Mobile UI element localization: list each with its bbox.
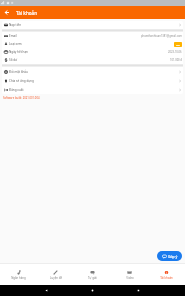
button[interactable]: Góp ý (157, 251, 182, 261)
staticText: Loại xem (9, 42, 22, 46)
staticText: Luyện đề (50, 276, 62, 280)
button[interactable]: Chia sẻ ứng dụng (2, 76, 183, 85)
staticText: Ngày hết hạn (9, 50, 28, 54)
button[interactable]: Đổi mật khẩu (2, 67, 183, 76)
staticText: 101.000 đ (170, 58, 182, 62)
button[interactable]: Số dư (2, 56, 183, 64)
staticText: Đổi mật khẩu (9, 70, 28, 74)
button[interactable]: Ngày hết hạn (2, 48, 183, 56)
button[interactable]: Loại xem (2, 40, 183, 48)
button[interactable]: Luyện đề (37, 270, 74, 280)
staticText: Góp ý (168, 254, 178, 259)
button[interactable]: Video (111, 270, 148, 280)
button[interactable]: Ngân hàng (0, 270, 37, 280)
button[interactable]: Email (2, 32, 183, 40)
button[interactable]: Đăng xuất (2, 85, 183, 94)
staticText: Tài khoản (160, 276, 173, 280)
staticText: Email (9, 34, 17, 38)
staticText: VIP (176, 43, 180, 46)
button[interactable]: Tự giải (74, 270, 111, 280)
staticText: Nạp tiền (9, 23, 21, 27)
staticText: Đăng xuất (9, 88, 24, 92)
staticText: Ngân hàng (11, 276, 26, 280)
staticText: Video (126, 276, 134, 280)
staticText: Tài khoản (16, 10, 38, 16)
staticText: phamthanhtuan1381@gmail.com (141, 34, 182, 38)
staticText: 2023-10-06 (168, 50, 182, 54)
staticText: Chia sẻ ứng dụng (9, 79, 34, 83)
button[interactable]: Back (0, 6, 13, 19)
staticText: Tự giải (88, 276, 97, 280)
staticText: Software build: 2021.001.004 (3, 96, 40, 100)
button[interactable]: Nạp tiền (2, 21, 183, 29)
button[interactable]: Tài khoản (148, 270, 185, 280)
staticText: Số dư (9, 58, 18, 62)
